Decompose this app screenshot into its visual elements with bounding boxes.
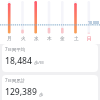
staticText: 7日間平均 bbox=[5, 46, 26, 52]
staticText: 月 bbox=[7, 36, 12, 42]
staticText: 金 bbox=[60, 36, 65, 42]
staticText: 歩 bbox=[39, 92, 44, 97]
staticText: 水 bbox=[34, 36, 39, 42]
staticText: 歩/日 bbox=[34, 60, 44, 66]
staticText: 10,000 bbox=[88, 20, 99, 25]
staticText: 18,484 bbox=[5, 55, 32, 67]
button[interactable]: 7日間平均 bbox=[2, 44, 98, 72]
staticText: 日 bbox=[87, 36, 92, 42]
staticText: 火 bbox=[21, 36, 26, 42]
button[interactable]: 7日間累計 bbox=[2, 75, 98, 100]
staticText: 129,389 bbox=[5, 86, 37, 98]
staticText: 土 bbox=[74, 36, 79, 42]
staticText: 木 bbox=[47, 36, 52, 42]
staticText: 7日間累計 bbox=[5, 77, 26, 83]
